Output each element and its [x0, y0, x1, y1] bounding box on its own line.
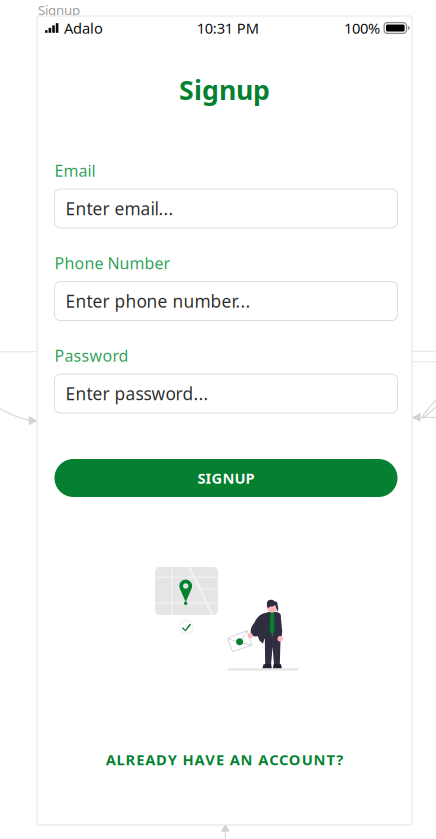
staticText: Email [54, 160, 95, 181]
staticText: 10:31 PM [197, 18, 259, 38]
staticText: Signup [38, 1, 80, 19]
staticText: Password [54, 345, 128, 366]
staticText: Signup [179, 72, 270, 107]
button[interactable]: Enter password... [54, 374, 397, 413]
staticText: Enter password... [65, 382, 208, 405]
button[interactable]: SIGNUP [54, 459, 397, 497]
staticText: Enter phone number... [65, 289, 250, 312]
button[interactable]: Enter phone number... [54, 281, 397, 320]
staticText: Phone Number [54, 252, 170, 274]
button[interactable]: Enter email... [54, 189, 397, 228]
staticText: SIGNUP [197, 468, 254, 488]
staticText: 100% [344, 18, 380, 38]
button[interactable]: ALREADY HAVE AN ACCOUNT? [37, 751, 412, 767]
staticText: ALREADY HAVE AN ACCOUNT? [106, 750, 343, 769]
staticText: Adalo [64, 18, 103, 38]
staticText: Enter email... [65, 197, 173, 220]
